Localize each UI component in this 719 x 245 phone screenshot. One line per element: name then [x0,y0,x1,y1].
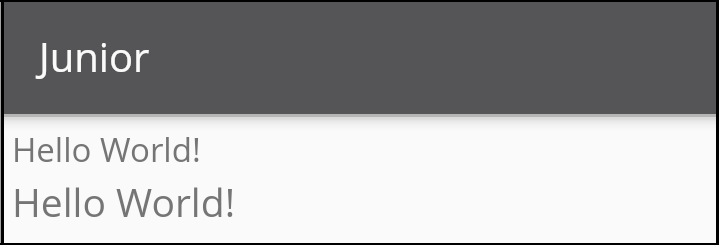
staticText: Hello World! [12,175,236,228]
button[interactable]: Junior app bar [3,2,716,114]
staticText: Hello World! [12,127,201,172]
staticText: Junior [39,29,150,83]
